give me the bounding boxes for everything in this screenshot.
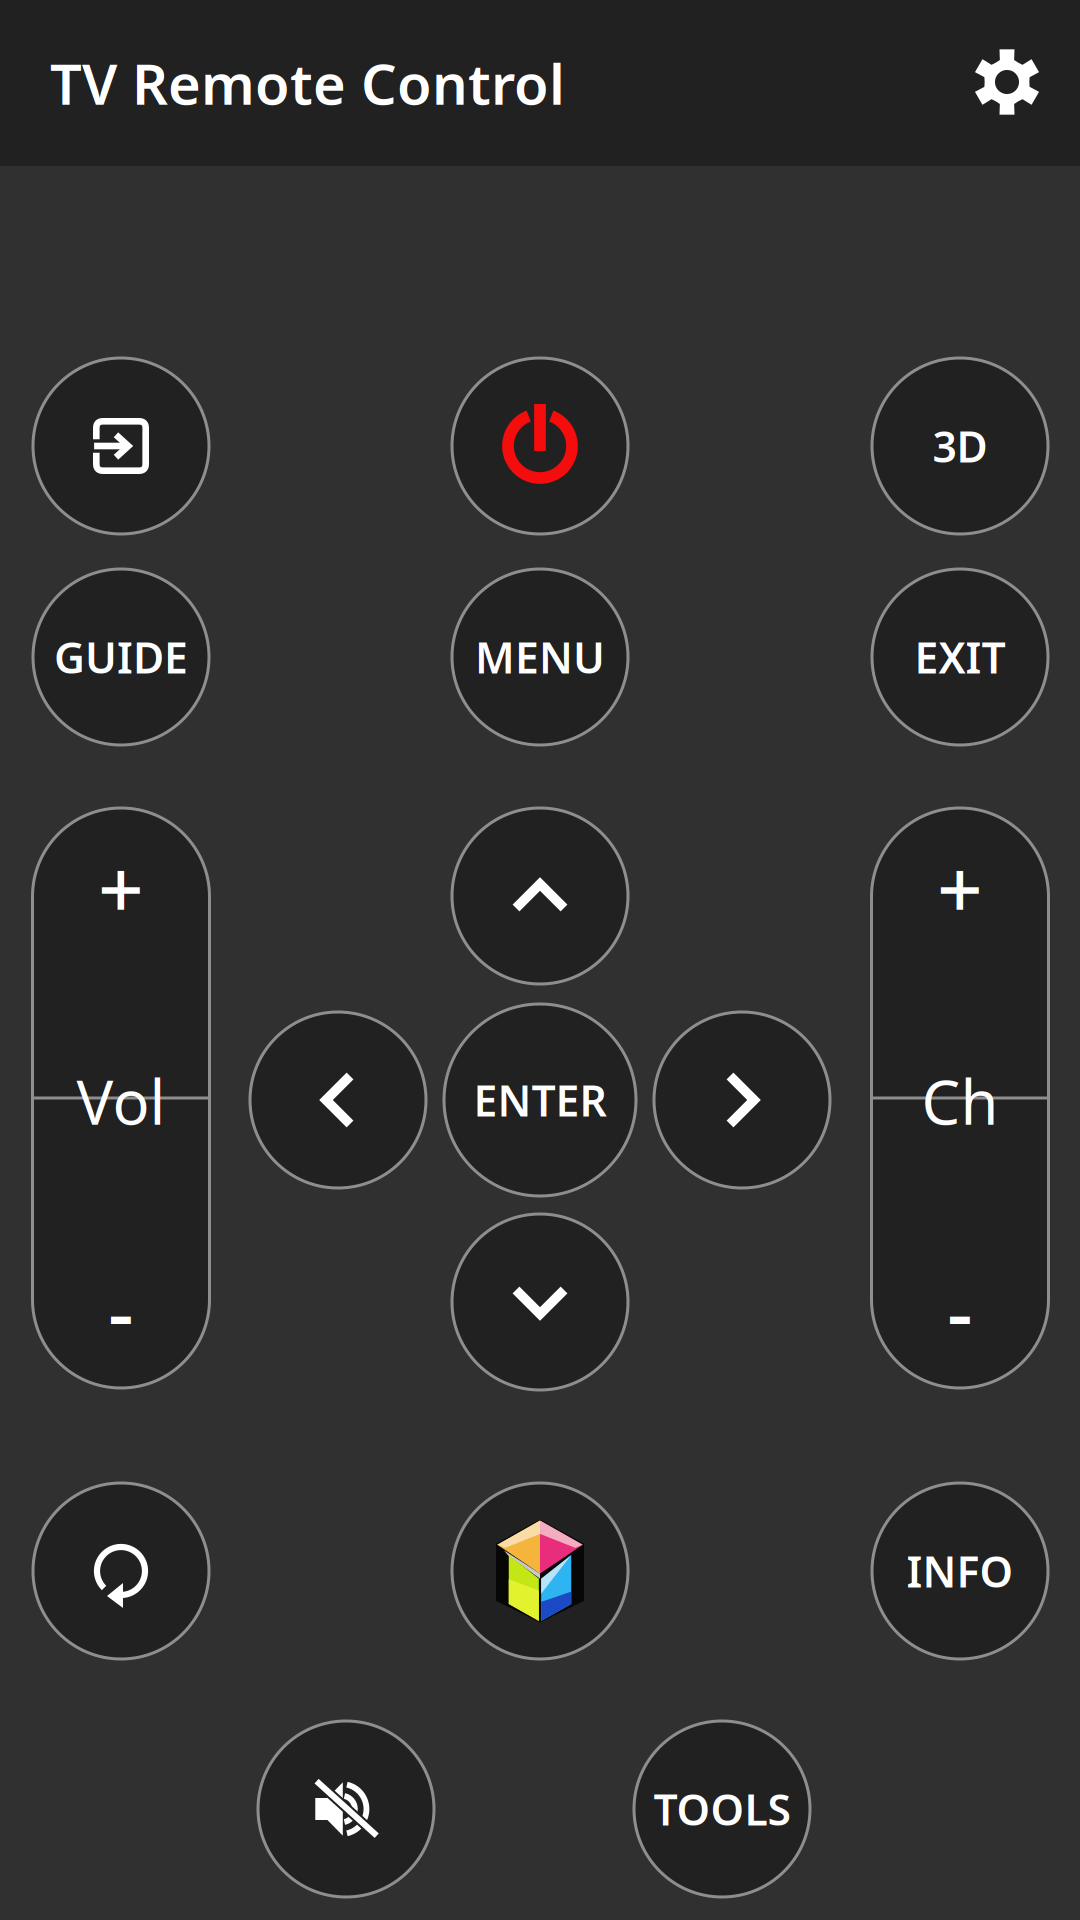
button[interactable]: Settings (947, 22, 1067, 142)
staticText: - (947, 1258, 973, 1364)
staticText: + (937, 834, 983, 941)
button[interactable]: GUIDE (33, 569, 209, 745)
button[interactable]: Source (33, 358, 209, 534)
button[interactable]: TV Remote Control (0, 0, 1080, 166)
button[interactable]: MENU (452, 569, 628, 745)
staticText: Vol (76, 1060, 165, 1142)
staticText: 3D (932, 418, 987, 474)
staticText: TOOLS (653, 1781, 790, 1837)
button[interactable]: Up (452, 808, 628, 984)
staticText: TV Remote Control (50, 46, 565, 120)
button[interactable]: Vol (32, 808, 209, 1388)
staticText: + (98, 834, 144, 941)
button[interactable]: Down (452, 1214, 628, 1390)
button[interactable]: Smart Hub (452, 1483, 628, 1659)
button[interactable]: Mute (258, 1721, 434, 1897)
staticText: ENTER (473, 1072, 606, 1128)
button[interactable]: Left (250, 1012, 426, 1188)
staticText: GUIDE (54, 629, 188, 685)
button[interactable]: 3D (872, 358, 1048, 534)
button[interactable]: EXIT (872, 569, 1048, 745)
button[interactable]: Ch (871, 808, 1048, 1388)
staticText: - (108, 1258, 134, 1364)
button[interactable]: Return (33, 1483, 209, 1659)
button[interactable]: Right (654, 1012, 830, 1188)
staticText: MENU (475, 629, 605, 685)
button[interactable]: TOOLS (634, 1721, 810, 1897)
button[interactable]: Power (452, 358, 628, 534)
button[interactable]: ENTER (444, 1004, 636, 1196)
staticText: EXIT (914, 629, 1005, 685)
button[interactable]: INFO (872, 1483, 1048, 1659)
staticText: Ch (921, 1060, 998, 1142)
staticText: INFO (906, 1543, 1013, 1599)
